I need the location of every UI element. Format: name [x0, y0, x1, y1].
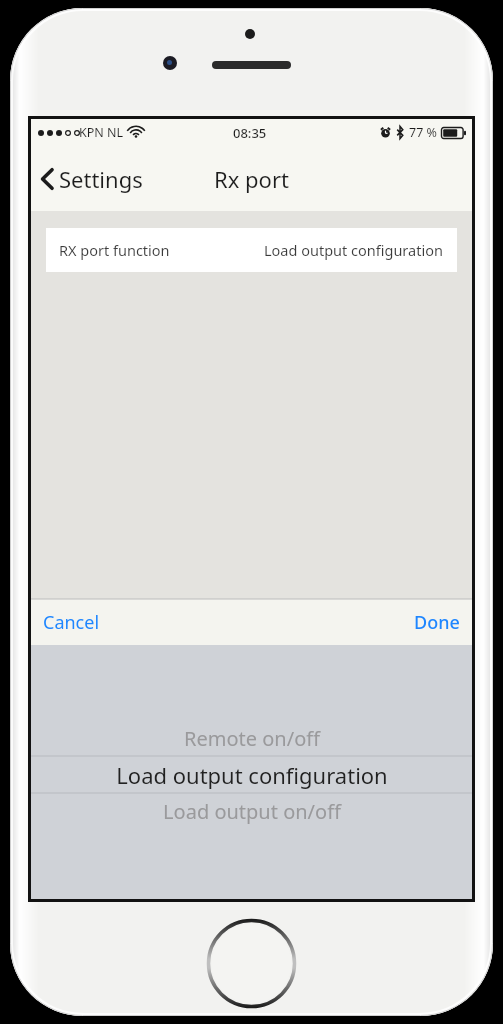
staticText: Done: [414, 610, 460, 635]
button[interactable]: RX port function: [46, 228, 457, 272]
staticText: Remote on/off: [184, 725, 320, 752]
staticText: Rx port: [214, 164, 289, 194]
button[interactable]: Remote on/off: [31, 720, 472, 756]
staticText: Settings: [59, 164, 143, 194]
button[interactable]: Load output configuration: [31, 756, 472, 793]
button[interactable]: Settings: [41, 164, 143, 194]
staticText: 77 %: [409, 124, 437, 141]
button[interactable]: Cancel: [31, 601, 112, 644]
button[interactable]: Done: [402, 601, 472, 644]
staticText: Load output configuration: [116, 760, 388, 790]
staticText: Load output on/off: [163, 798, 341, 825]
staticText: RX port function: [59, 240, 170, 260]
staticText: Load output configuration: [264, 240, 443, 260]
staticText: KPN NL: [79, 124, 124, 141]
staticText: 08:35: [233, 124, 267, 142]
button[interactable]: Load output on/off: [31, 793, 472, 829]
staticText: Cancel: [43, 610, 100, 635]
